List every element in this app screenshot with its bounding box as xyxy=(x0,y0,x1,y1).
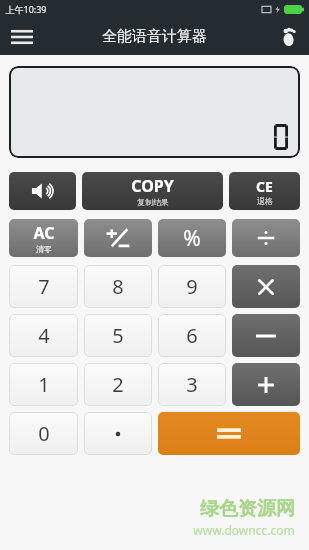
button[interactable]: 9 xyxy=(158,265,226,308)
button[interactable]: 7 xyxy=(9,265,78,308)
staticText: 5 xyxy=(112,322,124,349)
button[interactable]: 2 xyxy=(84,363,152,406)
staticText: 2 xyxy=(112,371,124,398)
button[interactable]: 0 xyxy=(9,412,78,455)
button[interactable]: COPY xyxy=(82,172,223,210)
staticText: 6 xyxy=(186,322,198,349)
staticText: www.downcc.com xyxy=(193,522,295,538)
button[interactable] xyxy=(84,412,152,455)
button[interactable]: AC xyxy=(9,219,78,257)
button[interactable]: 6 xyxy=(158,314,226,357)
staticText: 3 xyxy=(186,371,198,398)
button[interactable] xyxy=(9,172,76,210)
staticText: 1 xyxy=(38,371,50,398)
button[interactable]: 1 xyxy=(9,363,78,406)
button[interactable]: 8 xyxy=(84,265,152,308)
button[interactable]: 4 xyxy=(9,314,78,357)
button[interactable]: 3 xyxy=(158,363,226,406)
staticText: CE xyxy=(256,177,273,196)
button[interactable] xyxy=(9,66,300,158)
button[interactable]: Menu xyxy=(0,18,44,55)
button[interactable] xyxy=(232,314,300,357)
staticText: 复制结果 xyxy=(137,197,169,207)
button[interactable]: 5 xyxy=(84,314,152,357)
staticText: AC xyxy=(33,222,55,244)
button[interactable]: CE xyxy=(229,172,300,210)
staticText: 0 xyxy=(38,420,50,447)
button[interactable] xyxy=(158,412,300,455)
staticText: 9 xyxy=(186,273,198,300)
staticText: 8 xyxy=(112,273,124,300)
button[interactable] xyxy=(232,363,300,406)
button[interactable] xyxy=(84,219,152,257)
button[interactable] xyxy=(232,265,300,308)
button[interactable]: % xyxy=(158,219,226,257)
staticText: 退格 xyxy=(257,196,273,206)
staticText: COPY xyxy=(131,175,174,197)
staticText: 4 xyxy=(38,322,50,349)
staticText: 上午10:39 xyxy=(5,3,47,15)
staticText: 全能语音计算器 xyxy=(102,27,207,46)
staticText: 7 xyxy=(38,273,50,300)
button[interactable]: Footprint xyxy=(269,18,309,55)
staticText: 清零 xyxy=(36,244,52,254)
button[interactable] xyxy=(232,219,300,257)
staticText: 绿色资源网 xyxy=(200,497,295,521)
staticText: % xyxy=(183,224,201,253)
